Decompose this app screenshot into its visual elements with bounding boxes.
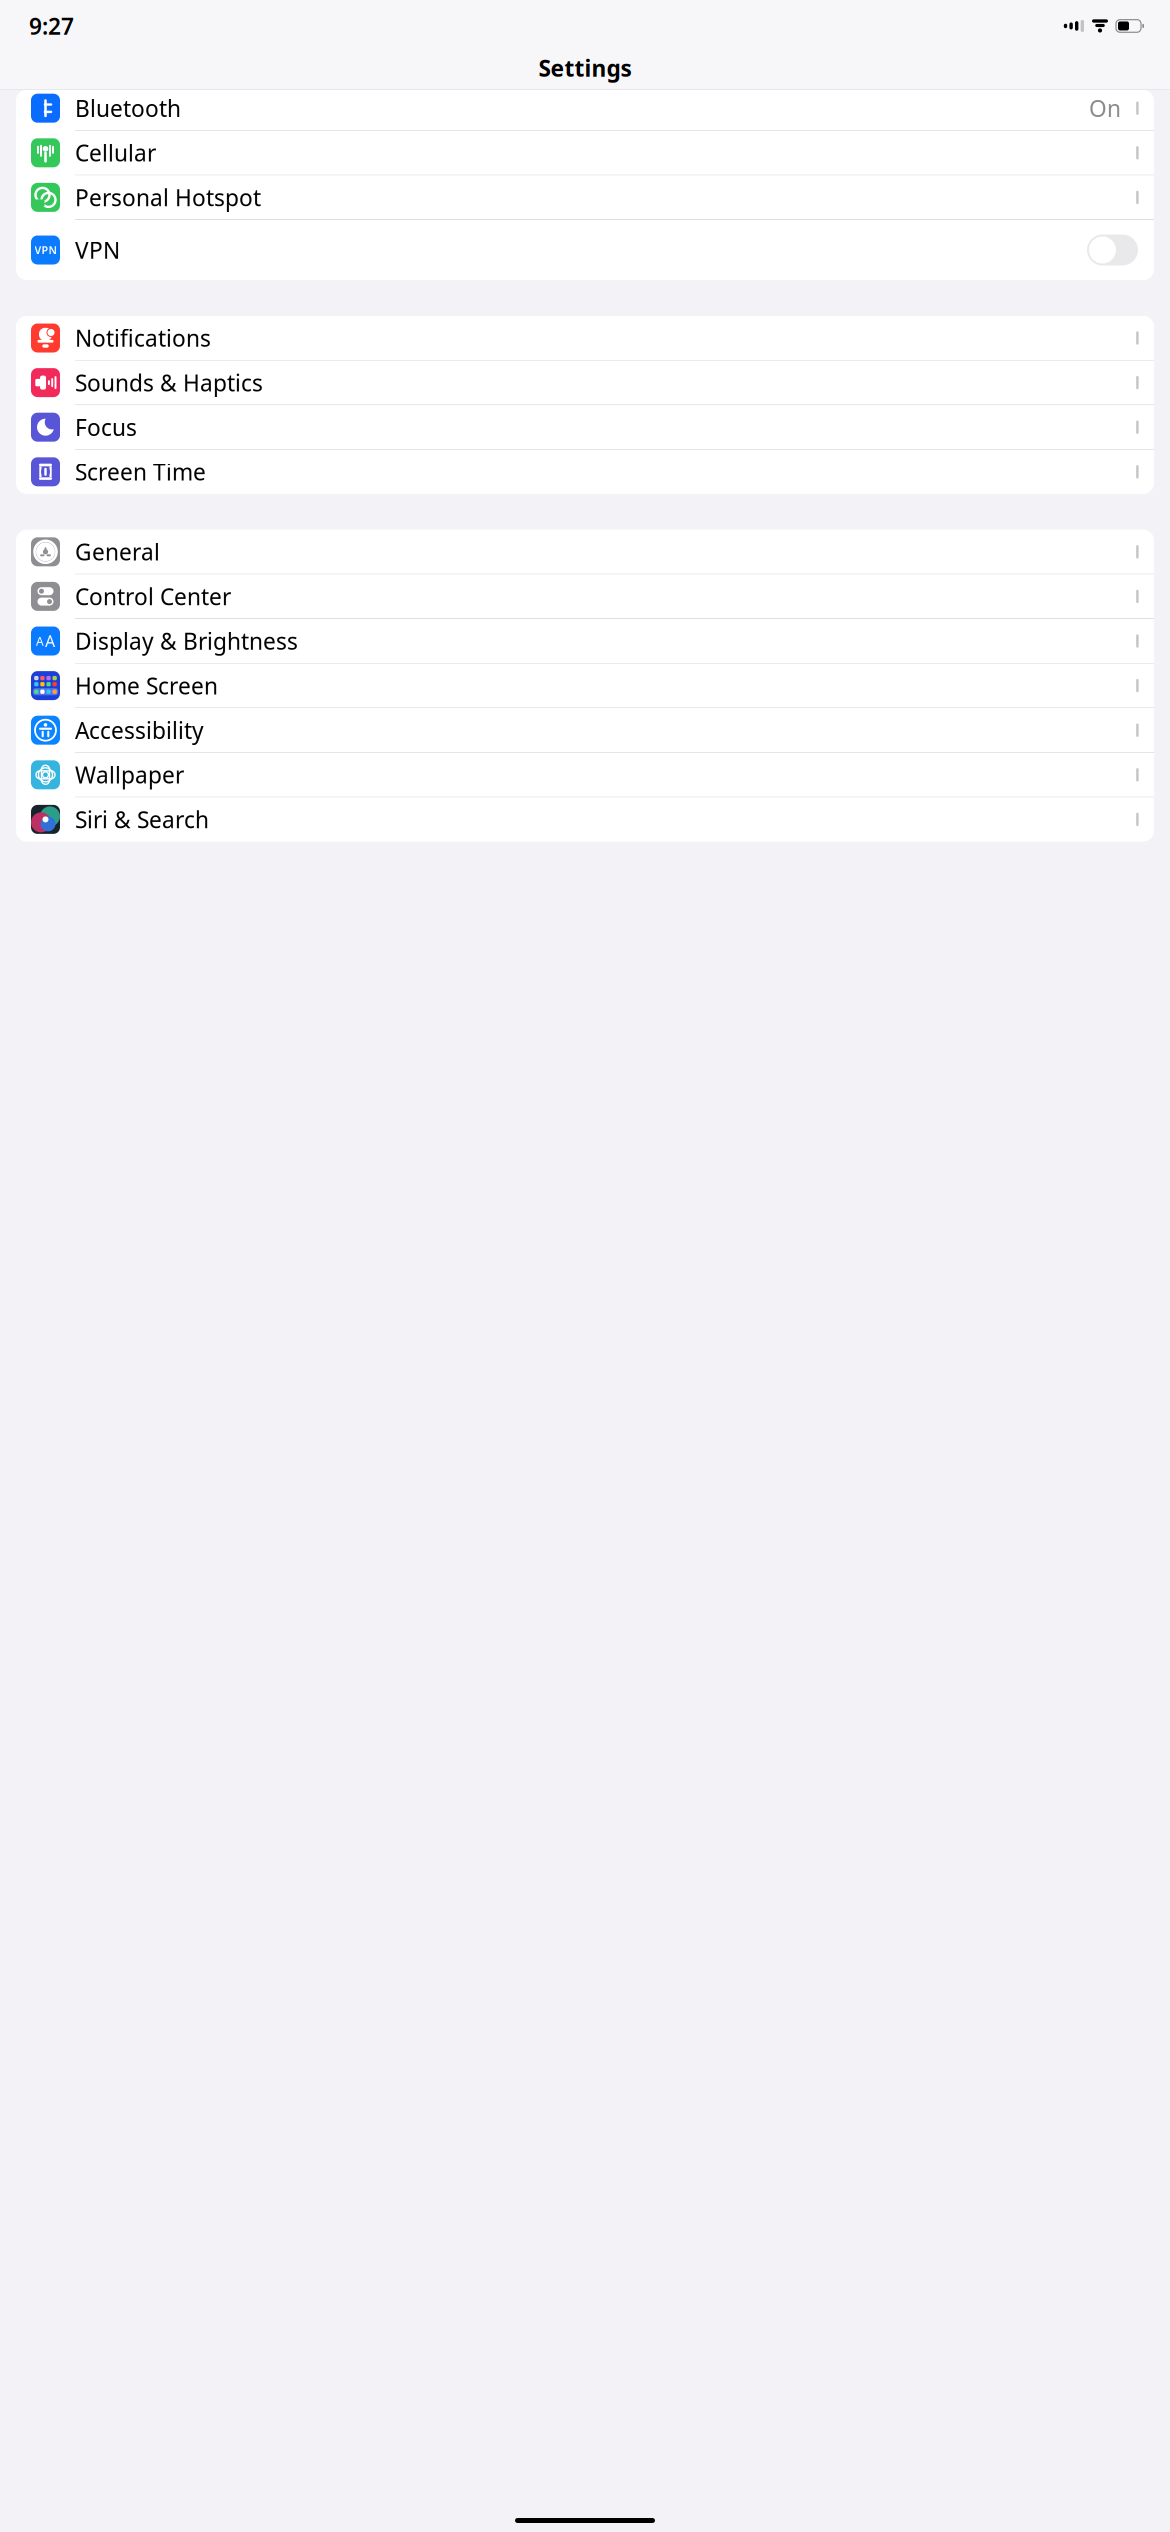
- staticText: 9:27: [29, 11, 74, 41]
- button[interactable]: Sounds & Haptics: [16, 361, 1154, 405]
- staticText: Bluetooth: [75, 93, 181, 123]
- staticText: Home Screen: [75, 670, 218, 701]
- staticText: Siri & Search: [75, 804, 209, 834]
- staticText: Screen Time: [75, 457, 206, 487]
- staticText: General: [75, 537, 160, 567]
- button[interactable]: Wi-Fi: [16, 42, 1154, 86]
- button[interactable]: Wallpaper: [16, 753, 1154, 797]
- button[interactable]: A: [16, 619, 1154, 664]
- staticText: Cellular: [75, 138, 156, 168]
- button[interactable]: VPN: [16, 220, 1154, 280]
- staticText: A: [36, 633, 44, 649]
- staticText: On: [1089, 93, 1121, 123]
- button[interactable]: Screen Time: [16, 450, 1154, 494]
- button[interactable]: Notifications: [16, 316, 1154, 361]
- staticText: A: [45, 630, 55, 652]
- button[interactable]: Cellular: [16, 131, 1154, 175]
- button[interactable]: General: [16, 530, 1154, 574]
- staticText: Display & Brightness: [75, 626, 298, 656]
- button[interactable]: Home Screen: [16, 664, 1154, 708]
- button[interactable]: Personal Hotspot: [16, 175, 1154, 220]
- button[interactable]: Bluetooth: [16, 86, 1154, 131]
- staticText: Sounds & Haptics: [75, 367, 263, 398]
- button[interactable]: Control Center: [16, 574, 1154, 619]
- staticText: Accessibility: [75, 715, 204, 745]
- staticText: VPN: [34, 243, 56, 257]
- staticText: Settings: [538, 53, 631, 83]
- staticText: VPN: [75, 235, 120, 265]
- staticText: Control Center: [75, 581, 231, 611]
- staticText: Focus: [75, 412, 137, 442]
- button[interactable]: Siri & Search: [16, 797, 1154, 841]
- staticText: Notifications: [75, 323, 211, 353]
- staticText: Personal Hotspot: [75, 182, 261, 212]
- button[interactable]: Focus: [16, 405, 1154, 450]
- button[interactable]: Accessibility: [16, 708, 1154, 753]
- staticText: Wallpaper: [75, 760, 184, 790]
